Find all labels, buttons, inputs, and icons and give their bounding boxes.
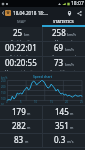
button[interactable]: 258 (43, 27, 85, 41)
staticText: 00:20:55 (5, 57, 37, 68)
staticText: 73 (54, 57, 64, 68)
button[interactable]: 179 (0, 106, 42, 119)
staticText: 00:22:01 (5, 42, 37, 53)
staticText: 258 (52, 27, 66, 38)
staticText: 69 (54, 42, 64, 53)
staticText: Total duration (10, 54, 33, 56)
button[interactable]: 282 (0, 120, 42, 133)
staticText: 282 (12, 120, 26, 131)
staticText: 351 (55, 120, 69, 131)
staticText: km/h (67, 32, 76, 37)
staticText: 0.3 (54, 134, 66, 145)
button[interactable]: 83 (0, 134, 42, 147)
staticText: 0 (6, 100, 8, 104)
staticText: km/h (65, 62, 74, 67)
staticText: Track length (11, 39, 31, 41)
staticText: km/h (65, 47, 74, 52)
staticText: 18.04.2018 18:... (13, 10, 48, 16)
staticText: 10 (34, 100, 37, 104)
staticText: m (27, 111, 31, 116)
staticText: km/h (1, 76, 8, 80)
button[interactable]: 0.3 (43, 134, 85, 147)
button[interactable]: Back (0, 7, 5, 18)
button[interactable]: 00:20:55 (0, 57, 42, 71)
staticText: 18:07 (71, 0, 84, 7)
staticText: 145 (55, 106, 69, 117)
staticText: 50 (1, 103, 4, 105)
staticText: 83 (14, 134, 24, 145)
staticText: m/s (67, 139, 74, 144)
button[interactable]: 73 (43, 57, 85, 71)
staticText: m (70, 125, 74, 130)
staticText: km (24, 32, 30, 37)
staticText: Speed chart (33, 74, 52, 79)
staticText: MAP (17, 19, 26, 24)
staticText: Max speed (55, 39, 73, 41)
staticText: Average speed (52, 54, 76, 56)
staticText: m (25, 139, 29, 144)
staticText: 5 (20, 100, 22, 104)
button[interactable]: 00:22:01 (0, 42, 42, 56)
staticText: 15 (50, 100, 53, 104)
staticText: 100 (1, 97, 6, 101)
staticText: 150 (1, 91, 6, 95)
button[interactable]: MAP (0, 18, 42, 27)
staticText: 200 (1, 85, 6, 89)
button[interactable]: STATISTICS (42, 18, 85, 27)
staticText: 250 (1, 79, 6, 83)
staticText: STATISTICS (53, 19, 74, 24)
button[interactable]: 351 (43, 120, 85, 133)
button[interactable]: Show on map (64, 8, 74, 18)
staticText: 179 (12, 106, 26, 117)
staticText: 25 (13, 27, 23, 38)
staticText: m (27, 125, 31, 130)
staticText: 25 (80, 100, 83, 104)
staticText: 20 (65, 100, 68, 104)
button[interactable]: Share (74, 8, 84, 18)
staticText: m (70, 111, 74, 116)
button[interactable]: 145 (43, 106, 85, 119)
button[interactable]: 69 (43, 42, 85, 56)
button[interactable]: 25 (0, 27, 42, 41)
staticText: Avg. while moving (50, 69, 79, 71)
staticText: Movement duration (5, 69, 37, 71)
